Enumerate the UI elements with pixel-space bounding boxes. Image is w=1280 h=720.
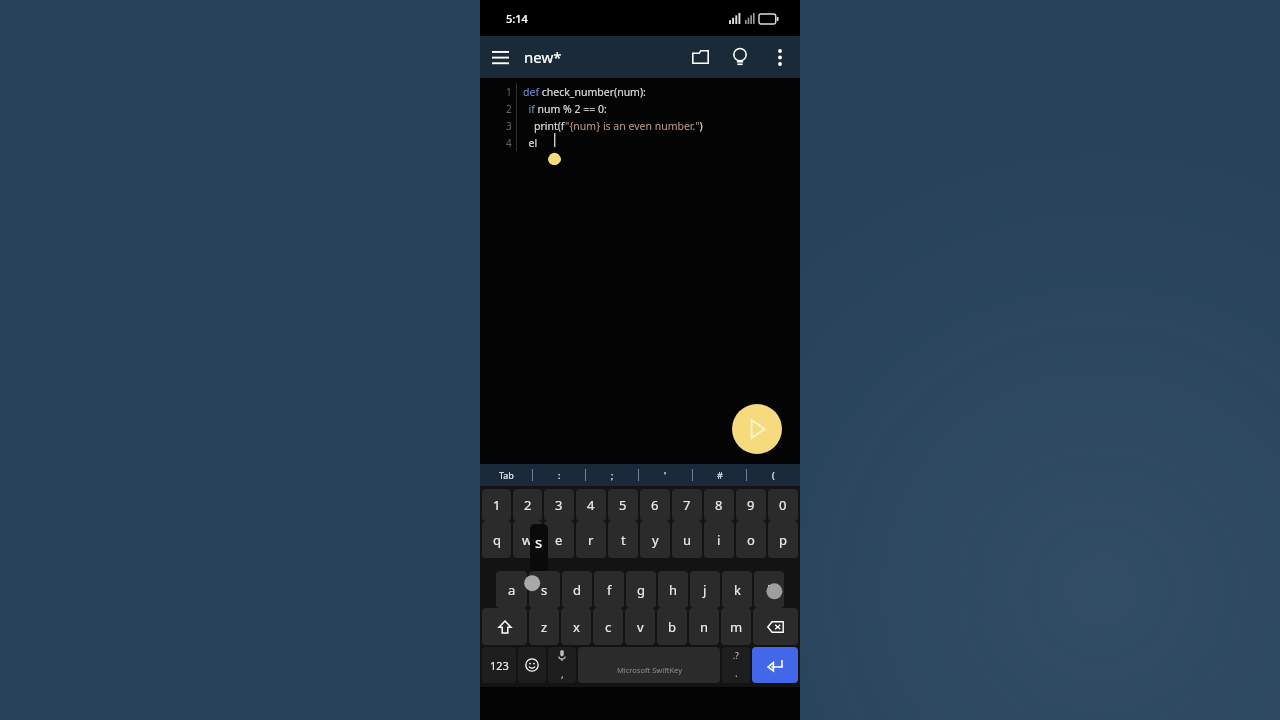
staticText: k	[734, 581, 741, 599]
button[interactable]: 6	[640, 489, 670, 521]
button[interactable]: '	[639, 464, 692, 486]
button[interactable]: .?	[722, 647, 750, 683]
button[interactable]: 8	[704, 489, 734, 521]
staticText: 2	[524, 496, 532, 514]
button[interactable]: Enter	[752, 647, 798, 683]
button[interactable]: x	[561, 608, 591, 645]
button[interactable]: (	[747, 464, 800, 486]
button[interactable]: Tab	[480, 464, 532, 486]
button[interactable]: Microsoft SwiftKey	[578, 647, 720, 683]
button[interactable]: k	[722, 571, 752, 608]
staticText: if num % 2 == 0:	[523, 102, 607, 116]
staticText: f	[607, 581, 612, 599]
button[interactable]: 2	[513, 489, 542, 521]
staticText: 6	[651, 496, 659, 514]
staticText: e	[555, 531, 563, 549]
button[interactable]: ;	[586, 464, 638, 486]
button[interactable]: h	[658, 571, 688, 608]
staticText: 9	[747, 496, 755, 514]
staticText: 2	[506, 102, 512, 116]
button[interactable]: a	[496, 571, 527, 608]
button[interactable]: f	[594, 571, 624, 608]
button[interactable]: e	[544, 521, 574, 558]
staticText: u	[683, 531, 692, 549]
staticText: h	[669, 581, 678, 599]
button[interactable]: Backspace	[753, 608, 798, 645]
button[interactable]: d	[562, 571, 592, 608]
button[interactable]: More options	[760, 37, 800, 77]
button[interactable]: o	[736, 521, 766, 558]
staticText: (	[772, 469, 775, 481]
staticText: 5	[619, 496, 627, 514]
staticText: Tab	[499, 469, 514, 481]
button[interactable]: j	[690, 571, 720, 608]
staticText: 4	[587, 496, 595, 514]
staticText: s	[535, 532, 543, 552]
staticText: .?	[733, 650, 739, 661]
staticText: 7	[683, 496, 691, 514]
button[interactable]: l	[754, 571, 784, 608]
staticText: 123	[490, 658, 509, 673]
button[interactable]: 9	[736, 489, 766, 521]
staticText: Microsoft SwiftKey	[617, 665, 682, 675]
staticText: :	[558, 469, 561, 481]
button[interactable]: new*	[524, 47, 562, 67]
staticText: a	[508, 581, 516, 599]
staticText: j	[703, 581, 707, 599]
staticText: .	[735, 666, 738, 680]
button[interactable]: i	[704, 521, 734, 558]
button[interactable]: Hint	[720, 37, 760, 77]
button[interactable]: 123	[482, 647, 516, 683]
button[interactable]: 5	[608, 489, 638, 521]
staticText: 1	[493, 496, 501, 514]
button[interactable]: Emoji	[518, 647, 546, 683]
staticText: q	[493, 531, 501, 549]
staticText: w	[522, 531, 533, 549]
staticText: s	[541, 581, 548, 599]
button[interactable]: c	[593, 608, 623, 645]
button[interactable]: s	[529, 571, 560, 608]
staticText: 3	[555, 496, 563, 514]
staticText: d	[573, 581, 581, 599]
button[interactable]: t	[608, 521, 638, 558]
staticText: b	[668, 618, 676, 636]
button[interactable]: 3	[544, 489, 574, 521]
button[interactable]: Menu	[480, 37, 520, 77]
button[interactable]: z	[529, 608, 559, 645]
button[interactable]: v	[625, 608, 655, 645]
button[interactable]: :	[533, 464, 585, 486]
button[interactable]: n	[689, 608, 719, 645]
button[interactable]: Run	[732, 404, 782, 454]
staticText: t	[621, 531, 626, 549]
staticText: n	[700, 618, 709, 636]
staticText: 1	[506, 85, 512, 99]
button[interactable]: 7	[672, 489, 702, 521]
button[interactable]: p	[768, 521, 798, 558]
staticText: i	[717, 531, 721, 549]
button[interactable]: 1	[482, 489, 511, 521]
button[interactable]: Open folder	[680, 37, 720, 77]
button[interactable]: #	[693, 464, 746, 486]
button[interactable]: g	[626, 571, 656, 608]
staticText: o	[747, 531, 755, 549]
staticText: m	[730, 618, 743, 636]
staticText: r	[588, 531, 594, 549]
staticText: ,	[561, 667, 564, 681]
button[interactable]: b	[657, 608, 687, 645]
staticText: 3	[506, 119, 512, 133]
button[interactable]: m	[721, 608, 751, 645]
button[interactable]: w	[513, 521, 542, 558]
staticText: y	[652, 531, 659, 549]
button[interactable]: u	[672, 521, 702, 558]
staticText: p	[779, 531, 787, 549]
button[interactable]: 4	[576, 489, 606, 521]
button[interactable]: r	[576, 521, 606, 558]
button[interactable]: q	[482, 521, 511, 558]
staticText: #	[717, 469, 723, 481]
button[interactable]: Shift	[482, 608, 527, 645]
button[interactable]: Voice input	[548, 647, 576, 683]
button[interactable]: y	[640, 521, 670, 558]
button[interactable]: 0	[768, 489, 798, 521]
staticText: el	[523, 136, 538, 150]
staticText: x	[573, 618, 580, 636]
